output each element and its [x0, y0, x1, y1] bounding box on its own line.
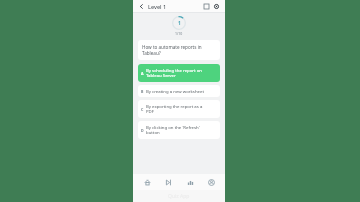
staticText: How to automate reports in Tableau? — [142, 44, 202, 56]
button[interactable]: Leaderboard — [183, 175, 197, 189]
staticText: C — [141, 107, 146, 112]
button[interactable]: A — [138, 64, 220, 82]
staticText: By creating a new worksheet — [146, 88, 217, 94]
button[interactable]: Bookmark — [202, 2, 211, 11]
staticText: Quiz App — [168, 193, 190, 200]
staticText: A — [141, 71, 146, 76]
button[interactable]: D — [138, 121, 220, 139]
button[interactable]: Settings — [212, 2, 221, 11]
staticText: By clicking on the 'Refresh' button — [146, 124, 217, 136]
button[interactable]: Back — [137, 2, 146, 11]
button[interactable]: B — [138, 85, 220, 97]
button[interactable]: Home — [140, 175, 154, 189]
staticText: 1 — [178, 20, 181, 27]
button[interactable]: C — [138, 100, 220, 118]
staticText: By scheduling the report on Tableau Serv… — [146, 67, 217, 79]
button[interactable]: Play — [161, 175, 175, 189]
staticText: D — [141, 128, 146, 133]
staticText: B — [141, 89, 146, 94]
staticText: By exporting the report as a PDF — [146, 103, 217, 115]
staticText: 1/10 — [175, 31, 183, 36]
button[interactable]: How to automate reports in Tableau? — [138, 40, 220, 60]
button[interactable]: Profile — [204, 175, 218, 189]
staticText: Level 1 — [148, 3, 167, 10]
